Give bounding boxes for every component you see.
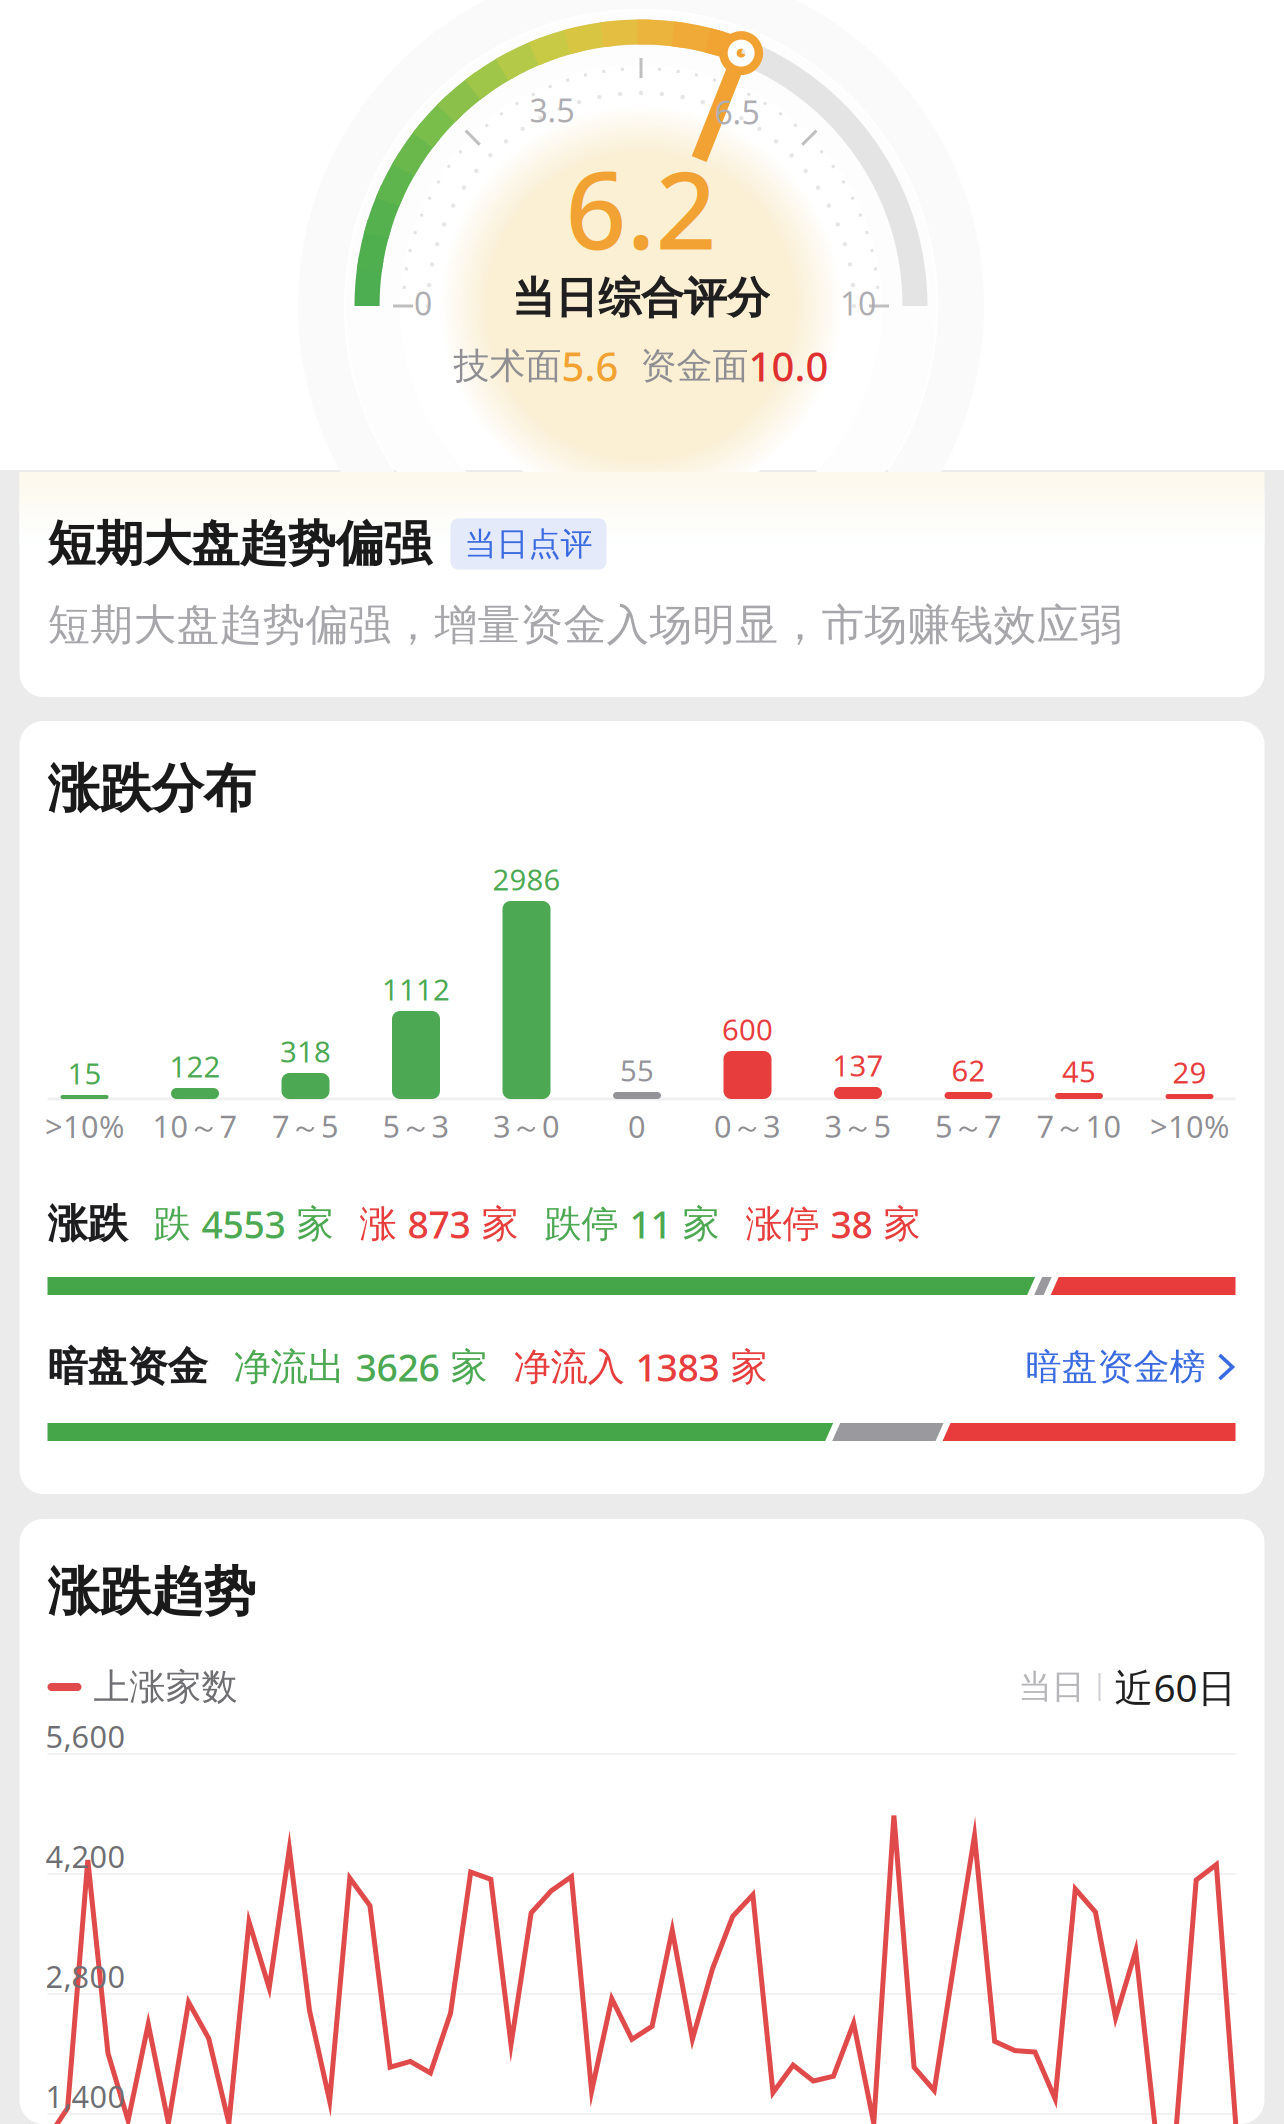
- staticText: 29: [1172, 1052, 1206, 1091]
- staticText: 3626: [355, 1342, 439, 1392]
- staticText: 0: [628, 1106, 646, 1146]
- staticText: 62: [951, 1050, 985, 1089]
- staticText: 家: [285, 1201, 333, 1247]
- staticText: 2986: [492, 859, 560, 898]
- staticText: 0: [414, 282, 432, 324]
- staticText: 上涨家数: [93, 1665, 237, 1709]
- staticText: 1,400: [45, 2076, 125, 2116]
- staticText: 涨跌趋势: [47, 1560, 255, 1624]
- staticText: 122: [169, 1046, 220, 1085]
- staticText: 家: [872, 1201, 920, 1247]
- button[interactable]: 近60日: [1114, 1661, 1236, 1713]
- staticText: 家: [470, 1201, 518, 1247]
- staticText: 2,800: [45, 1956, 125, 1996]
- staticText: 10.0: [748, 339, 828, 392]
- staticText: 当日: [1018, 1666, 1084, 1707]
- staticText: 1383: [635, 1342, 719, 1392]
- staticText: 涨停: [745, 1201, 830, 1247]
- staticText: 7～5: [272, 1106, 339, 1146]
- staticText: 当日点评: [464, 524, 592, 564]
- staticText: 净流入: [513, 1344, 635, 1390]
- staticText: 11: [629, 1199, 671, 1249]
- button[interactable]: 当日: [1018, 1666, 1084, 1707]
- staticText: 3～0: [493, 1106, 560, 1146]
- staticText: 10～7: [152, 1106, 237, 1146]
- staticText: 家: [439, 1344, 487, 1390]
- staticText: 家: [671, 1201, 719, 1247]
- staticText: 600: [722, 1009, 773, 1048]
- staticText: >10%: [1150, 1106, 1229, 1146]
- staticText: 38: [830, 1199, 872, 1249]
- staticText: 4,200: [45, 1836, 125, 1876]
- staticText: 873: [407, 1199, 470, 1249]
- staticText: 3.5: [529, 89, 574, 131]
- staticText: >10%: [45, 1106, 124, 1146]
- staticText: 当日综合评分: [512, 272, 770, 324]
- staticText: 涨跌分布: [47, 757, 255, 821]
- staticText: 资金面: [640, 344, 748, 388]
- staticText: 5,600: [45, 1716, 125, 1756]
- staticText: 短期大盘趋势偏强，增量资金入场明显，市场赚钱效应弱: [47, 599, 1122, 651]
- staticText: 近60日: [1114, 1661, 1236, 1713]
- staticText: 45: [1062, 1051, 1096, 1090]
- staticText: 5～7: [935, 1106, 1002, 1146]
- staticText: 净流出: [233, 1344, 355, 1390]
- staticText: 短期大盘趋势偏强: [47, 514, 431, 573]
- staticText: 技术面: [453, 344, 561, 388]
- staticText: 跌停: [544, 1201, 629, 1247]
- staticText: 55: [620, 1050, 654, 1089]
- staticText: 5～3: [382, 1106, 449, 1146]
- staticText: 7～10: [1036, 1106, 1121, 1146]
- staticText: 跌: [153, 1201, 201, 1247]
- staticText: 15: [67, 1053, 101, 1092]
- staticText: 318: [280, 1031, 331, 1070]
- staticText: 涨: [359, 1201, 407, 1247]
- staticText: 137: [832, 1045, 883, 1084]
- staticText: 3～5: [824, 1106, 891, 1146]
- staticText: 0～3: [714, 1106, 781, 1146]
- staticText: 暗盘资金榜: [1025, 1345, 1205, 1389]
- staticText: 10: [840, 282, 876, 324]
- button[interactable]: 暗盘资金: [47, 1342, 1236, 1392]
- staticText: 5.6: [561, 339, 618, 392]
- staticText: 涨跌: [47, 1199, 127, 1248]
- staticText: 6.5: [714, 91, 759, 133]
- staticText: 1112: [382, 969, 450, 1008]
- staticText: 暗盘资金: [47, 1342, 207, 1391]
- staticText: 6.2: [565, 137, 716, 279]
- staticText: 4553: [201, 1199, 285, 1249]
- staticText: 家: [719, 1344, 767, 1390]
